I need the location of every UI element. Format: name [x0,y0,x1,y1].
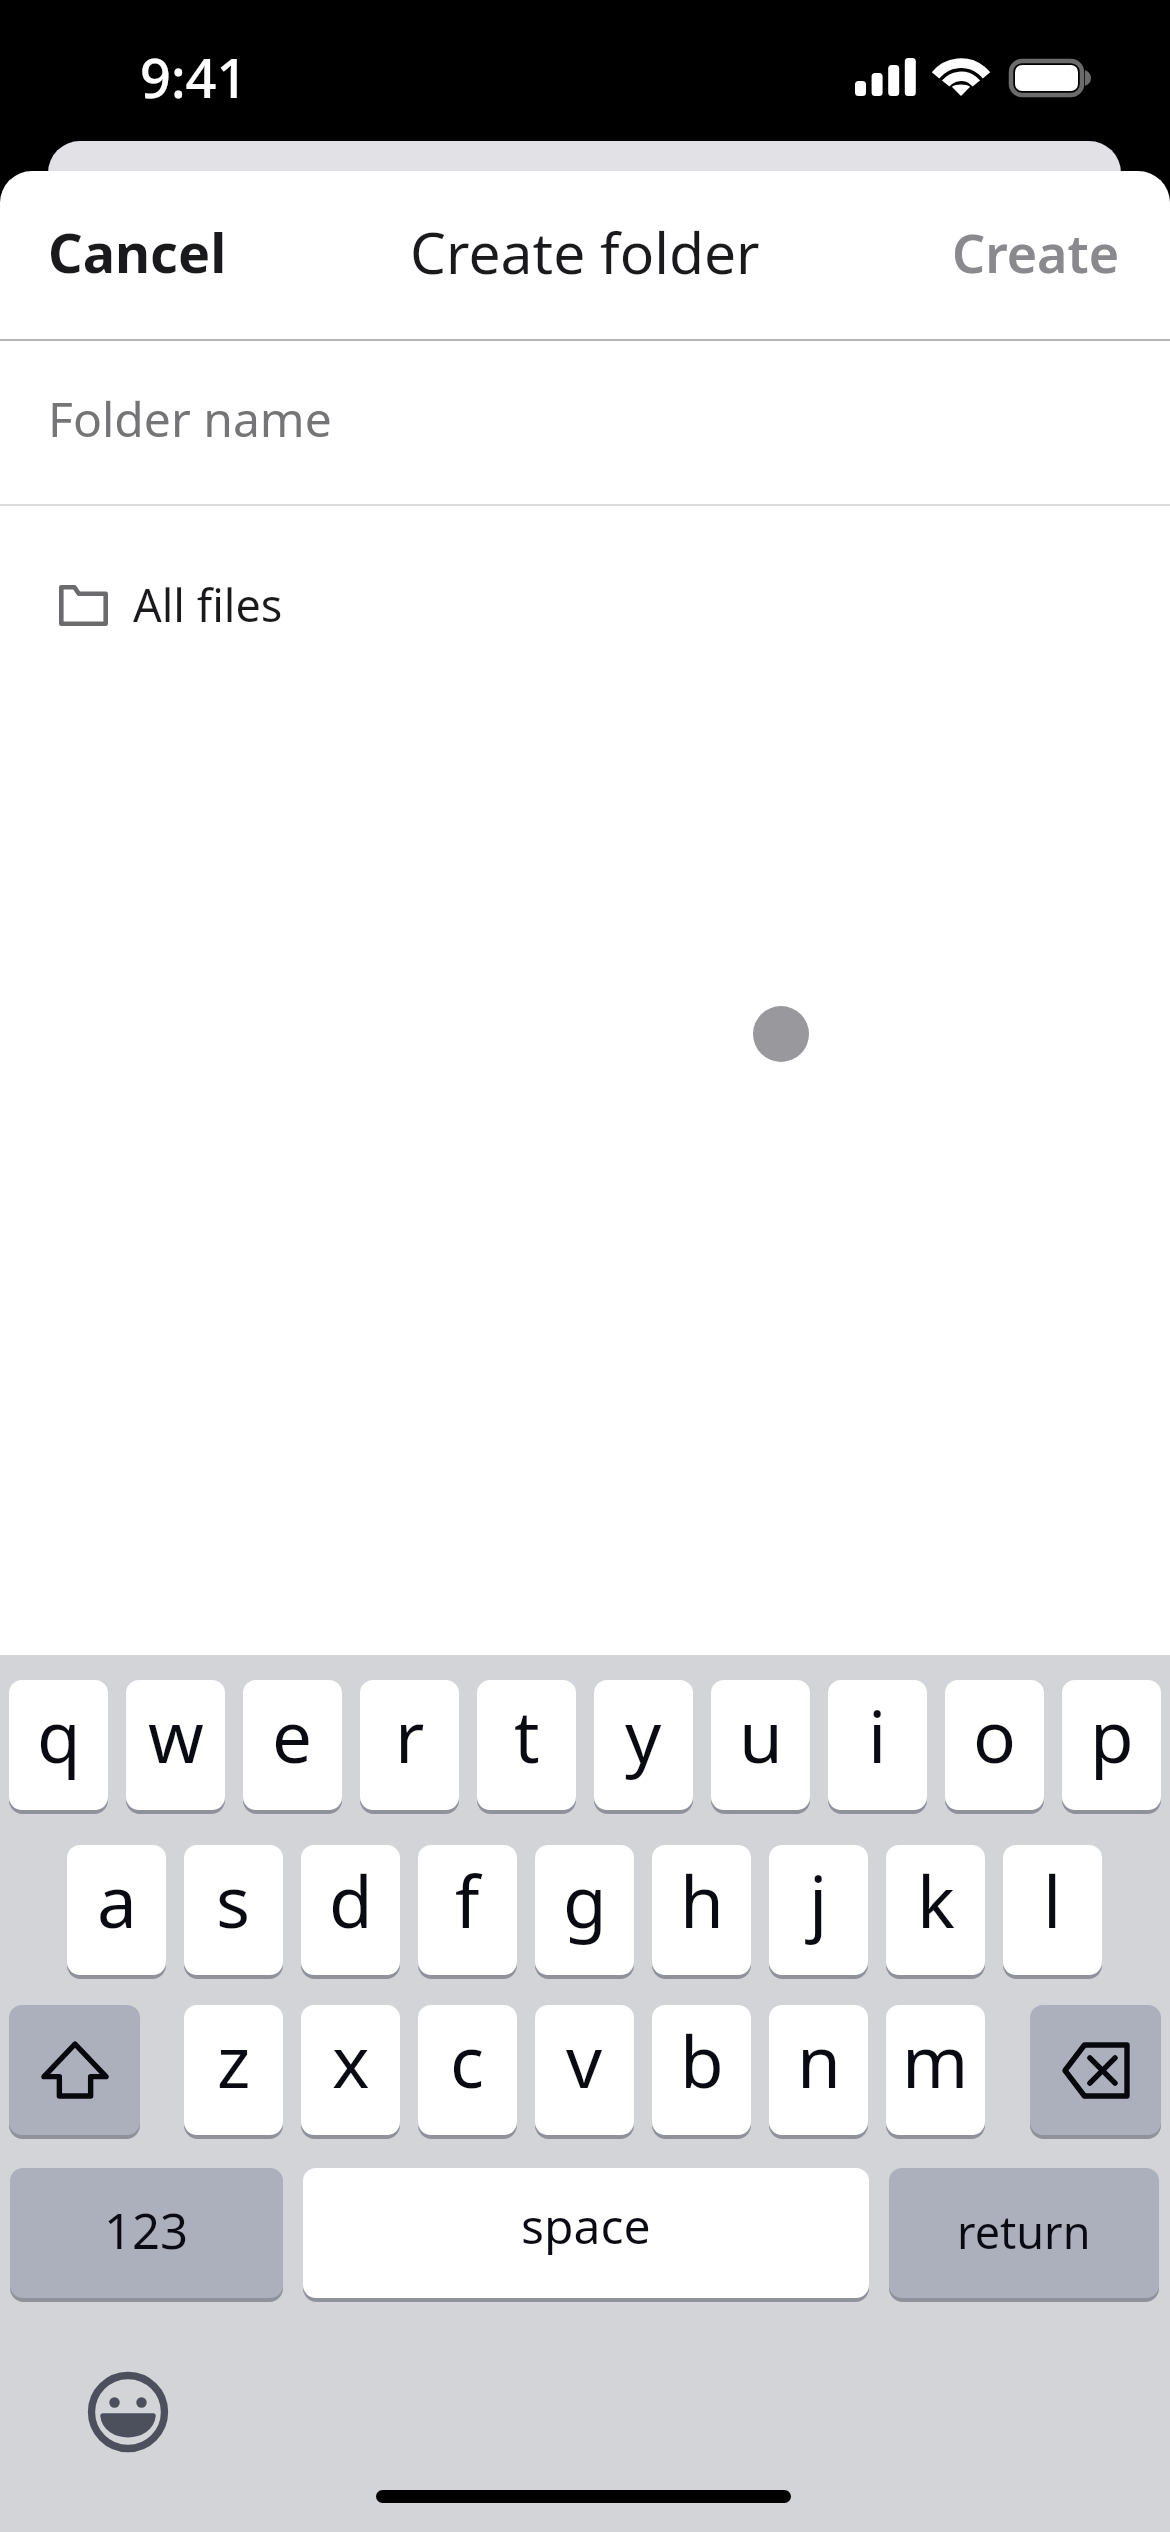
staticText: o [973,1687,1016,1784]
button[interactable]: g [535,1845,634,1975]
staticText: k [917,1852,955,1949]
button[interactable]: h [652,1845,751,1975]
staticText: u [739,1687,783,1784]
button[interactable]: w [126,1680,225,1810]
staticText: w [148,1687,204,1784]
button[interactable]: i [828,1680,927,1810]
staticText: Create folder [410,213,760,291]
button[interactable]: j [769,1845,868,1975]
staticText: g [563,1852,607,1949]
button[interactable]: return [889,2168,1159,2298]
staticText: d [329,1852,373,1949]
staticText: e [272,1687,313,1784]
staticText: z [217,2012,251,2109]
staticText: a [97,1852,137,1949]
button[interactable]: v [535,2005,634,2135]
button[interactable]: m [886,2005,985,2135]
staticText: p [1090,1687,1134,1784]
button[interactable]: y [594,1680,693,1810]
button[interactable]: n [769,2005,868,2135]
staticText: 9:41 [140,40,248,114]
button[interactable]: q [9,1680,108,1810]
staticText: f [455,1852,480,1949]
staticText: Cancel [48,215,227,289]
button[interactable]: t [477,1680,576,1810]
button[interactable]: s [184,1845,283,1975]
staticText: b [680,2012,724,2109]
button[interactable]: z [184,2005,283,2135]
button[interactable]: d [301,1845,400,1975]
button[interactable]: r [360,1680,459,1810]
button[interactable]: All files [0,543,1170,667]
staticText: h [680,1852,724,1949]
staticText: q [37,1687,81,1784]
staticText: v [566,2012,603,2109]
button[interactable]: Shift [9,2005,140,2135]
staticText: l [1043,1852,1062,1949]
button[interactable]: Create [912,195,1170,314]
button[interactable]: b [652,2005,751,2135]
button[interactable]: u [711,1680,810,1810]
staticText: All files [133,574,283,635]
button[interactable]: p [1062,1680,1161,1810]
staticText: Create [952,217,1120,288]
button[interactable]: 123 [10,2168,283,2298]
staticText: y [625,1687,662,1784]
button[interactable]: o [945,1680,1044,1810]
button[interactable]: k [886,1845,985,1975]
staticText: 123 [104,2197,189,2264]
button[interactable]: f [418,1845,517,1975]
button[interactable]: e [243,1680,342,1810]
staticText: space [521,2193,651,2258]
button[interactable]: Cancel [0,193,267,315]
staticText: j [809,1852,828,1949]
button[interactable]: c [418,2005,517,2135]
button[interactable]: Folder name [0,341,1170,503]
staticText: m [902,2012,969,2109]
staticText: s [216,1852,251,1949]
staticText: t [514,1687,540,1784]
staticText: r [395,1687,425,1784]
button[interactable]: Emoji [89,2373,167,2451]
button[interactable]: l [1003,1845,1102,1975]
staticText: x [332,2012,370,2109]
button[interactable]: x [301,2005,400,2135]
staticText: c [450,2012,485,2109]
staticText: i [868,1687,887,1784]
button[interactable]: space [303,2168,869,2298]
button[interactable]: a [67,1845,166,1975]
button[interactable]: Backspace [1030,2005,1161,2135]
staticText: Folder name [48,386,332,451]
staticText: n [797,2012,841,2109]
staticText: return [957,2201,1091,2262]
